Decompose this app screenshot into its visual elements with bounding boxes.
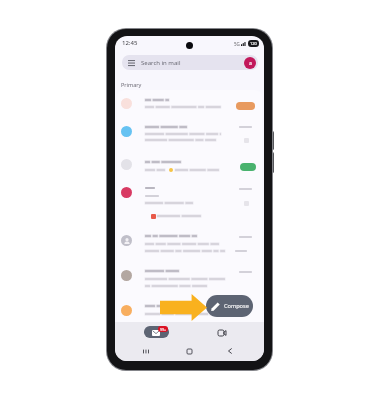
staticText: Search in mail <box>141 59 181 67</box>
staticText: 99+ <box>160 327 167 332</box>
button[interactable]: Meet <box>215 326 228 339</box>
staticText: a <box>249 60 252 67</box>
staticText: 5G <box>234 41 240 47</box>
staticText: Primary <box>121 81 142 88</box>
staticText: Compose <box>224 302 249 310</box>
staticText: 120 <box>250 41 257 46</box>
button[interactable]: Back <box>224 345 236 357</box>
button[interactable]: Search in mail <box>122 55 258 70</box>
staticText: 12:45 <box>122 39 138 47</box>
button[interactable]: Mail <box>144 326 169 338</box>
button[interactable]: Compose <box>206 295 253 317</box>
button[interactable]: Home <box>183 345 195 357</box>
button[interactable]: Recents <box>140 345 152 357</box>
